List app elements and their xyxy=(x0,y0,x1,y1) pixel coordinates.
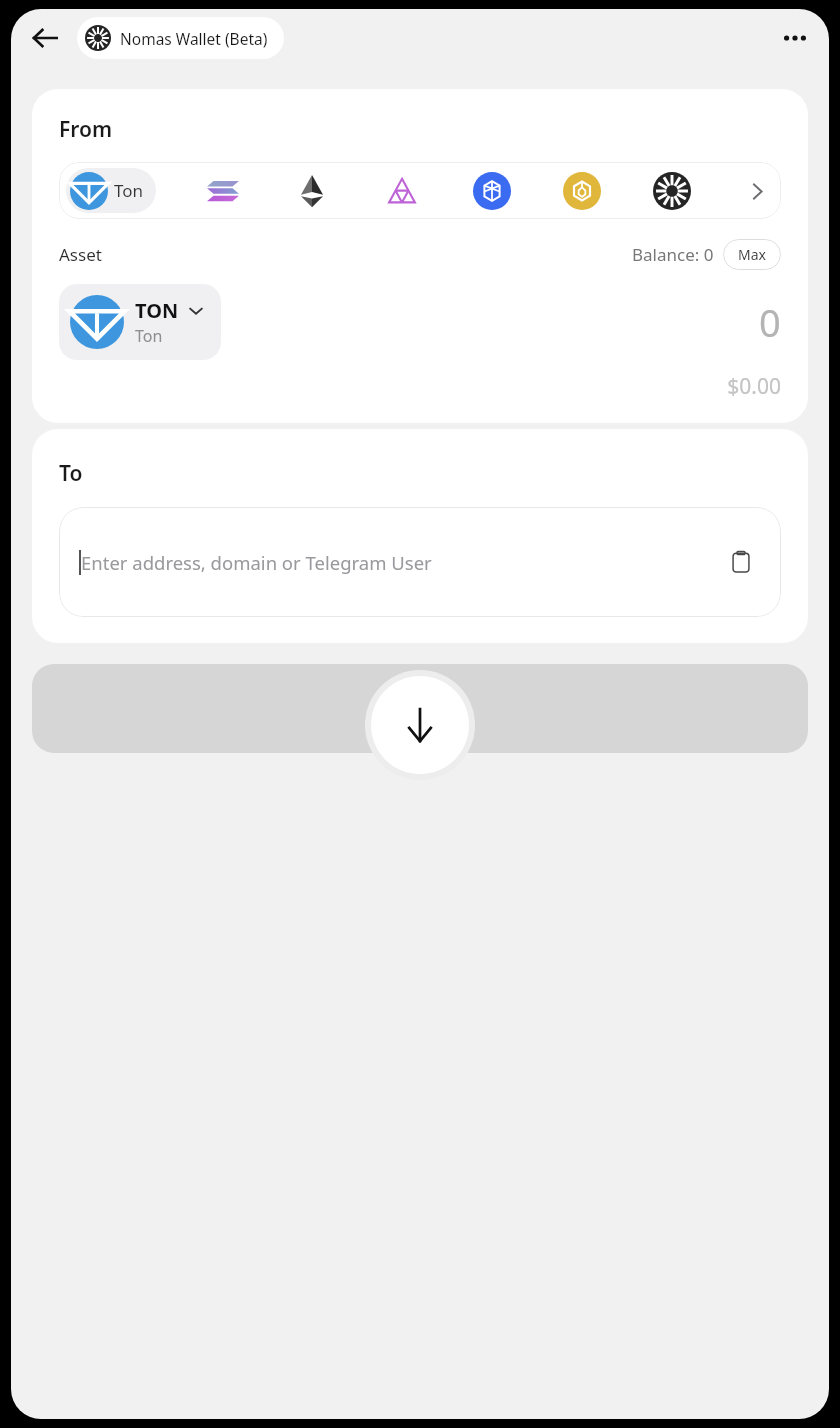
button[interactable]: Enter address, domain or Telegram User xyxy=(59,507,781,617)
staticText: Next xyxy=(393,692,448,725)
staticText: Asset xyxy=(59,243,102,266)
button[interactable]: Alephium xyxy=(380,169,424,213)
button[interactable]: Swap direction xyxy=(371,676,469,774)
staticText: To xyxy=(59,459,83,488)
staticText: Ton xyxy=(114,179,144,202)
button[interactable]: BNB Chain xyxy=(560,169,604,213)
button[interactable]: Ethereum xyxy=(290,169,334,213)
button[interactable]: Ton xyxy=(66,168,156,213)
button[interactable]: More options xyxy=(773,16,817,60)
staticText: Nomas Wallet (Beta) xyxy=(120,28,268,49)
button[interactable]: Nomas chain xyxy=(650,169,694,213)
staticText: Balance: 0 xyxy=(632,243,714,266)
button[interactable]: Solana xyxy=(201,169,245,213)
staticText: $0.00 xyxy=(59,372,781,401)
button[interactable]: Back xyxy=(23,16,67,60)
button[interactable]: More chains xyxy=(740,174,774,208)
staticText: TON xyxy=(135,297,179,324)
staticText: From xyxy=(59,115,113,144)
staticText: Enter address, domain or Telegram User xyxy=(81,550,432,575)
staticText: Max xyxy=(738,245,766,264)
button[interactable]: Max xyxy=(723,239,781,270)
button[interactable]: TON xyxy=(59,284,221,360)
button[interactable]: Nomas Wallet (Beta) xyxy=(77,17,284,59)
button[interactable]: Fantom xyxy=(470,169,514,213)
button[interactable]: Paste from clipboard xyxy=(721,542,761,582)
staticText: Ton xyxy=(135,325,163,347)
button[interactable]: Next xyxy=(32,664,808,753)
staticText: 0 xyxy=(759,296,781,348)
